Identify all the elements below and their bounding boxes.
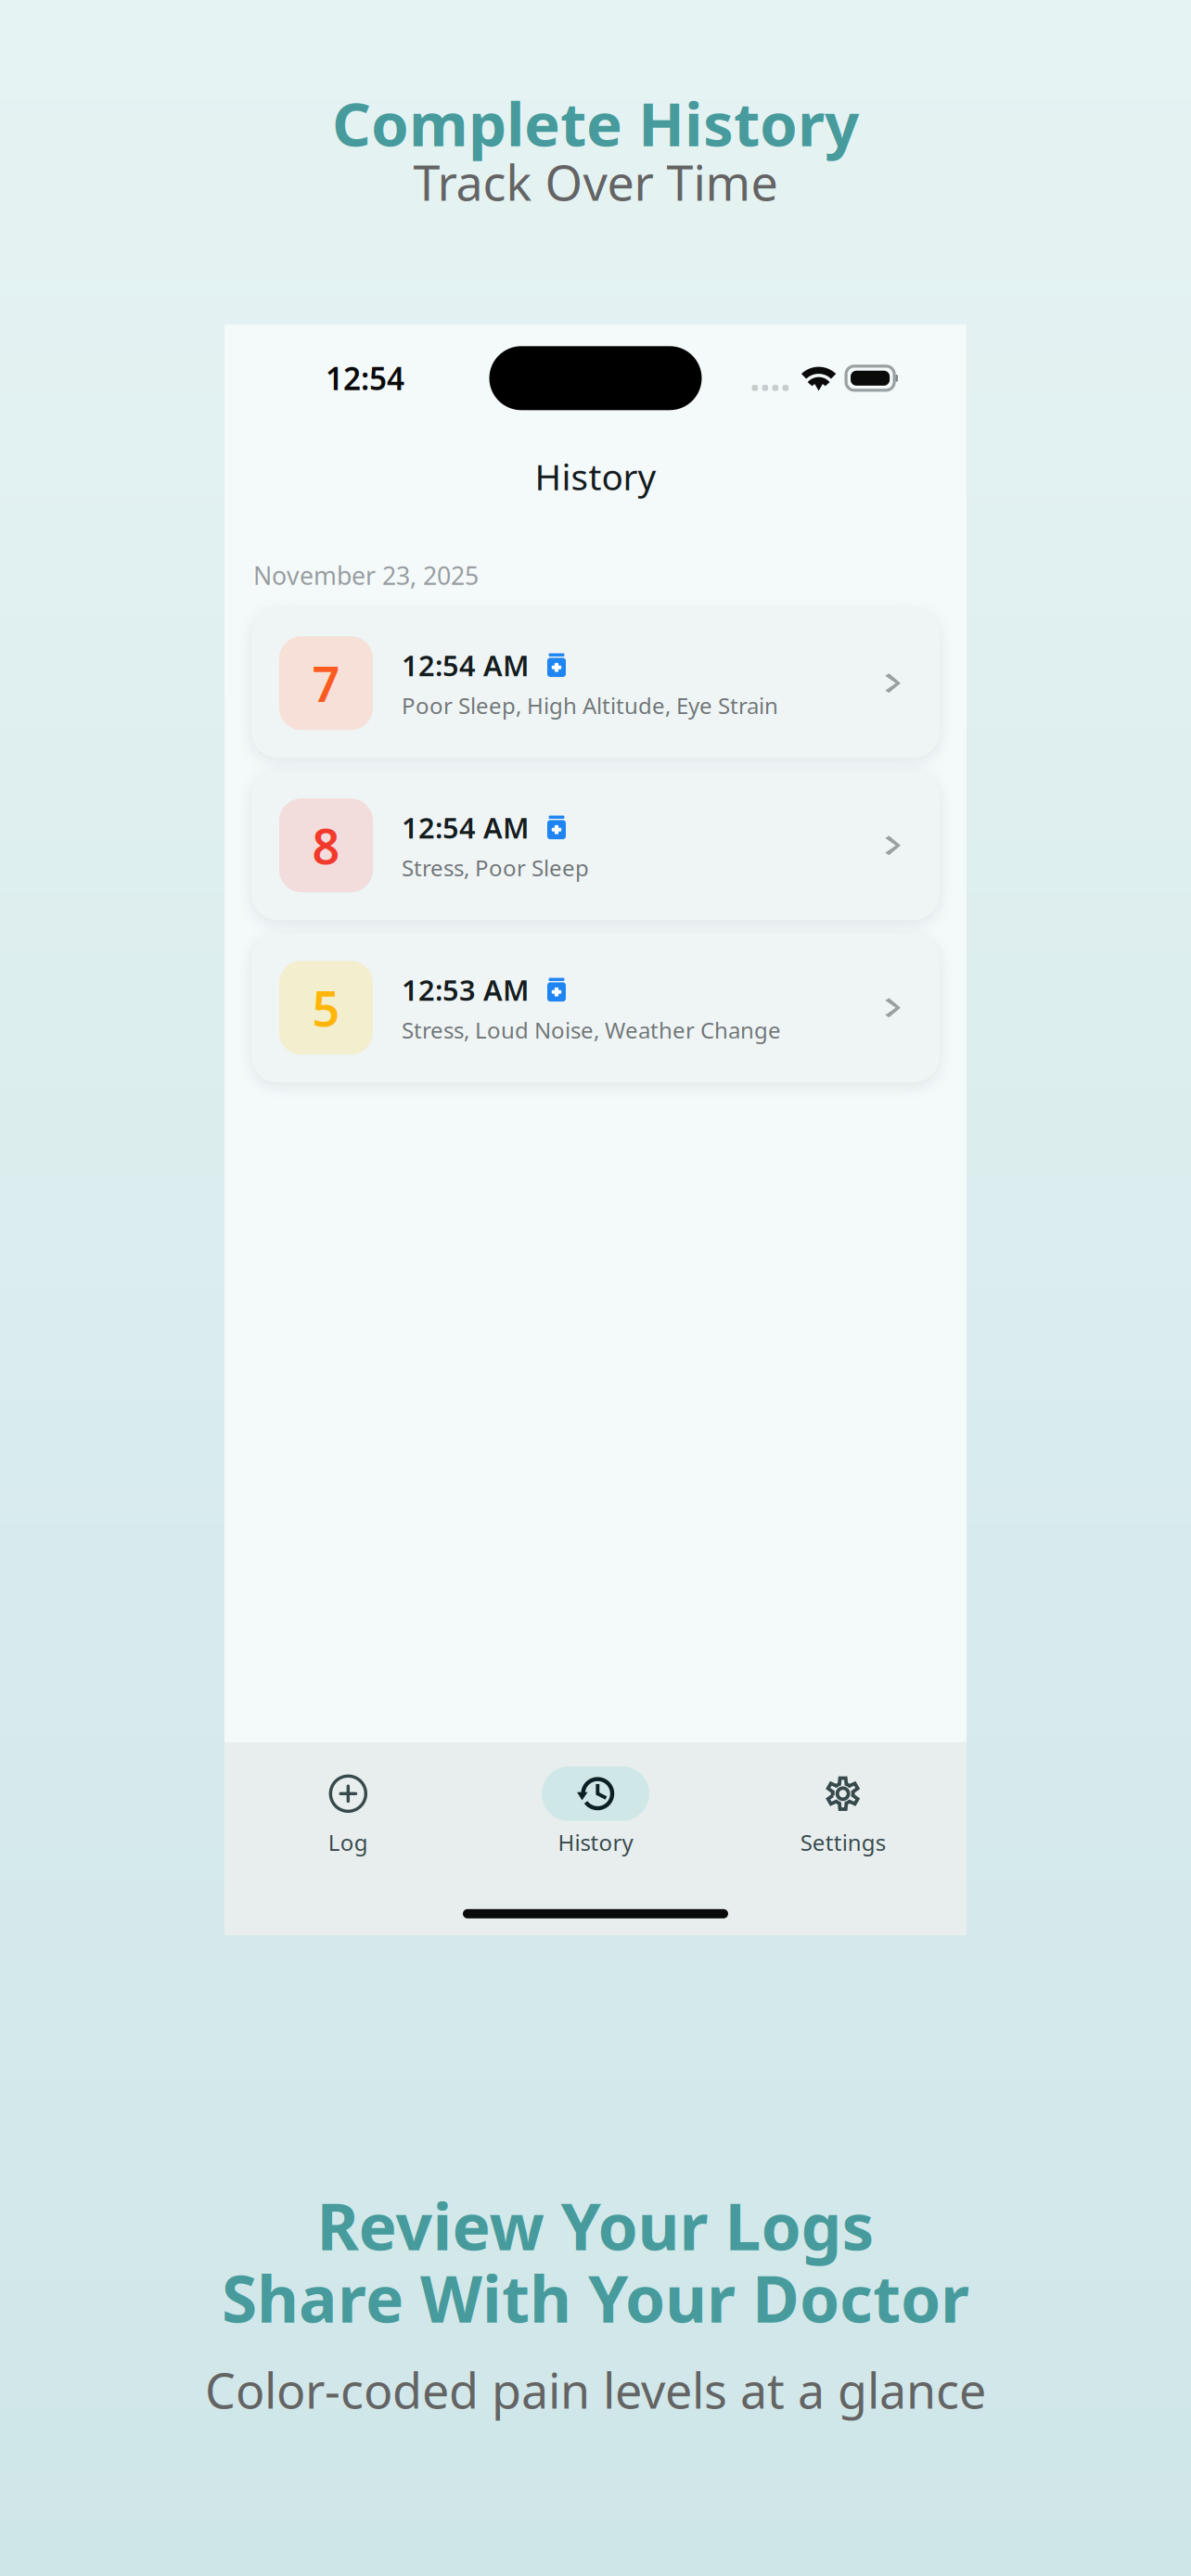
- staticText: 7: [312, 651, 340, 715]
- staticText: Share With Your Doctor: [222, 2255, 969, 2340]
- button[interactable]: 5: [251, 933, 940, 1082]
- staticText: Stress, Loud Noise, Weather Change: [402, 1015, 781, 1045]
- button[interactable]: 8: [251, 771, 940, 920]
- button[interactable]: 7: [251, 608, 940, 758]
- staticText: Color-coded pain levels at a glance: [205, 2358, 986, 2422]
- staticText: Track Over Time: [413, 150, 778, 214]
- button[interactable]: Settings: [719, 1766, 967, 1857]
- button[interactable]: History: [472, 1766, 719, 1857]
- staticText: 5: [312, 976, 340, 1040]
- staticText: 12:53 AM: [402, 971, 529, 1009]
- staticText: 12:54: [326, 358, 404, 399]
- staticText: Complete History: [332, 83, 859, 163]
- staticText: 12:54 AM: [402, 646, 529, 684]
- staticText: Stress, Poor Sleep: [402, 853, 589, 882]
- staticText: Settings: [800, 1827, 886, 1857]
- staticText: 12:54 AM: [402, 809, 529, 846]
- staticText: History: [535, 453, 656, 500]
- button[interactable]: Log: [224, 1766, 472, 1857]
- staticText: November 23, 2025: [253, 559, 479, 592]
- staticText: Poor Sleep, High Altitude, Eye Strain: [402, 691, 778, 720]
- staticText: 8: [312, 813, 340, 877]
- staticText: History: [558, 1827, 633, 1857]
- staticText: Review Your Logs: [317, 2183, 874, 2268]
- staticText: Log: [328, 1827, 368, 1857]
